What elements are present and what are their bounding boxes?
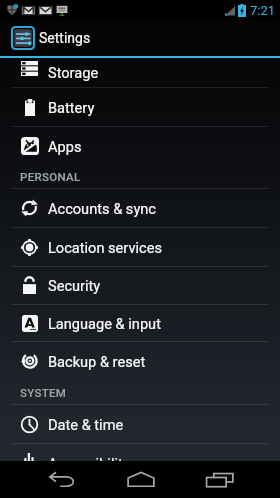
staticText: Storage [48,64,99,81]
button[interactable]: Home [107,461,175,498]
staticText: Date & time [48,416,124,433]
staticText: SYSTEM [20,386,67,399]
button[interactable]: Date & time [0,405,280,443]
staticText: Apps [48,138,82,155]
staticText: Accounts & sync [48,200,156,217]
button[interactable]: Recent apps [186,461,253,498]
button[interactable]: Accounts & sync [0,189,280,227]
button[interactable]: Storage [0,58,280,87]
staticText: Backup & reset [48,353,146,370]
button[interactable]: Accessibility [0,444,280,483]
staticText: PERSONAL [20,170,81,183]
staticText: Language & input [48,315,161,332]
button[interactable]: Battery [0,88,280,126]
button[interactable]: Backup & reset [0,342,280,381]
staticText: Battery [48,99,95,116]
button[interactable]: Security [0,267,280,304]
button[interactable]: Language & input [0,305,280,341]
staticText: Settings [39,30,91,46]
button[interactable]: Location services [0,228,280,266]
staticText: Location services [48,239,162,256]
staticText: Accessibility [48,455,130,472]
button[interactable]: Back [29,461,96,498]
staticText: 7:21 [250,3,276,18]
staticText: Security [48,277,101,294]
button[interactable]: Apps [0,127,280,165]
